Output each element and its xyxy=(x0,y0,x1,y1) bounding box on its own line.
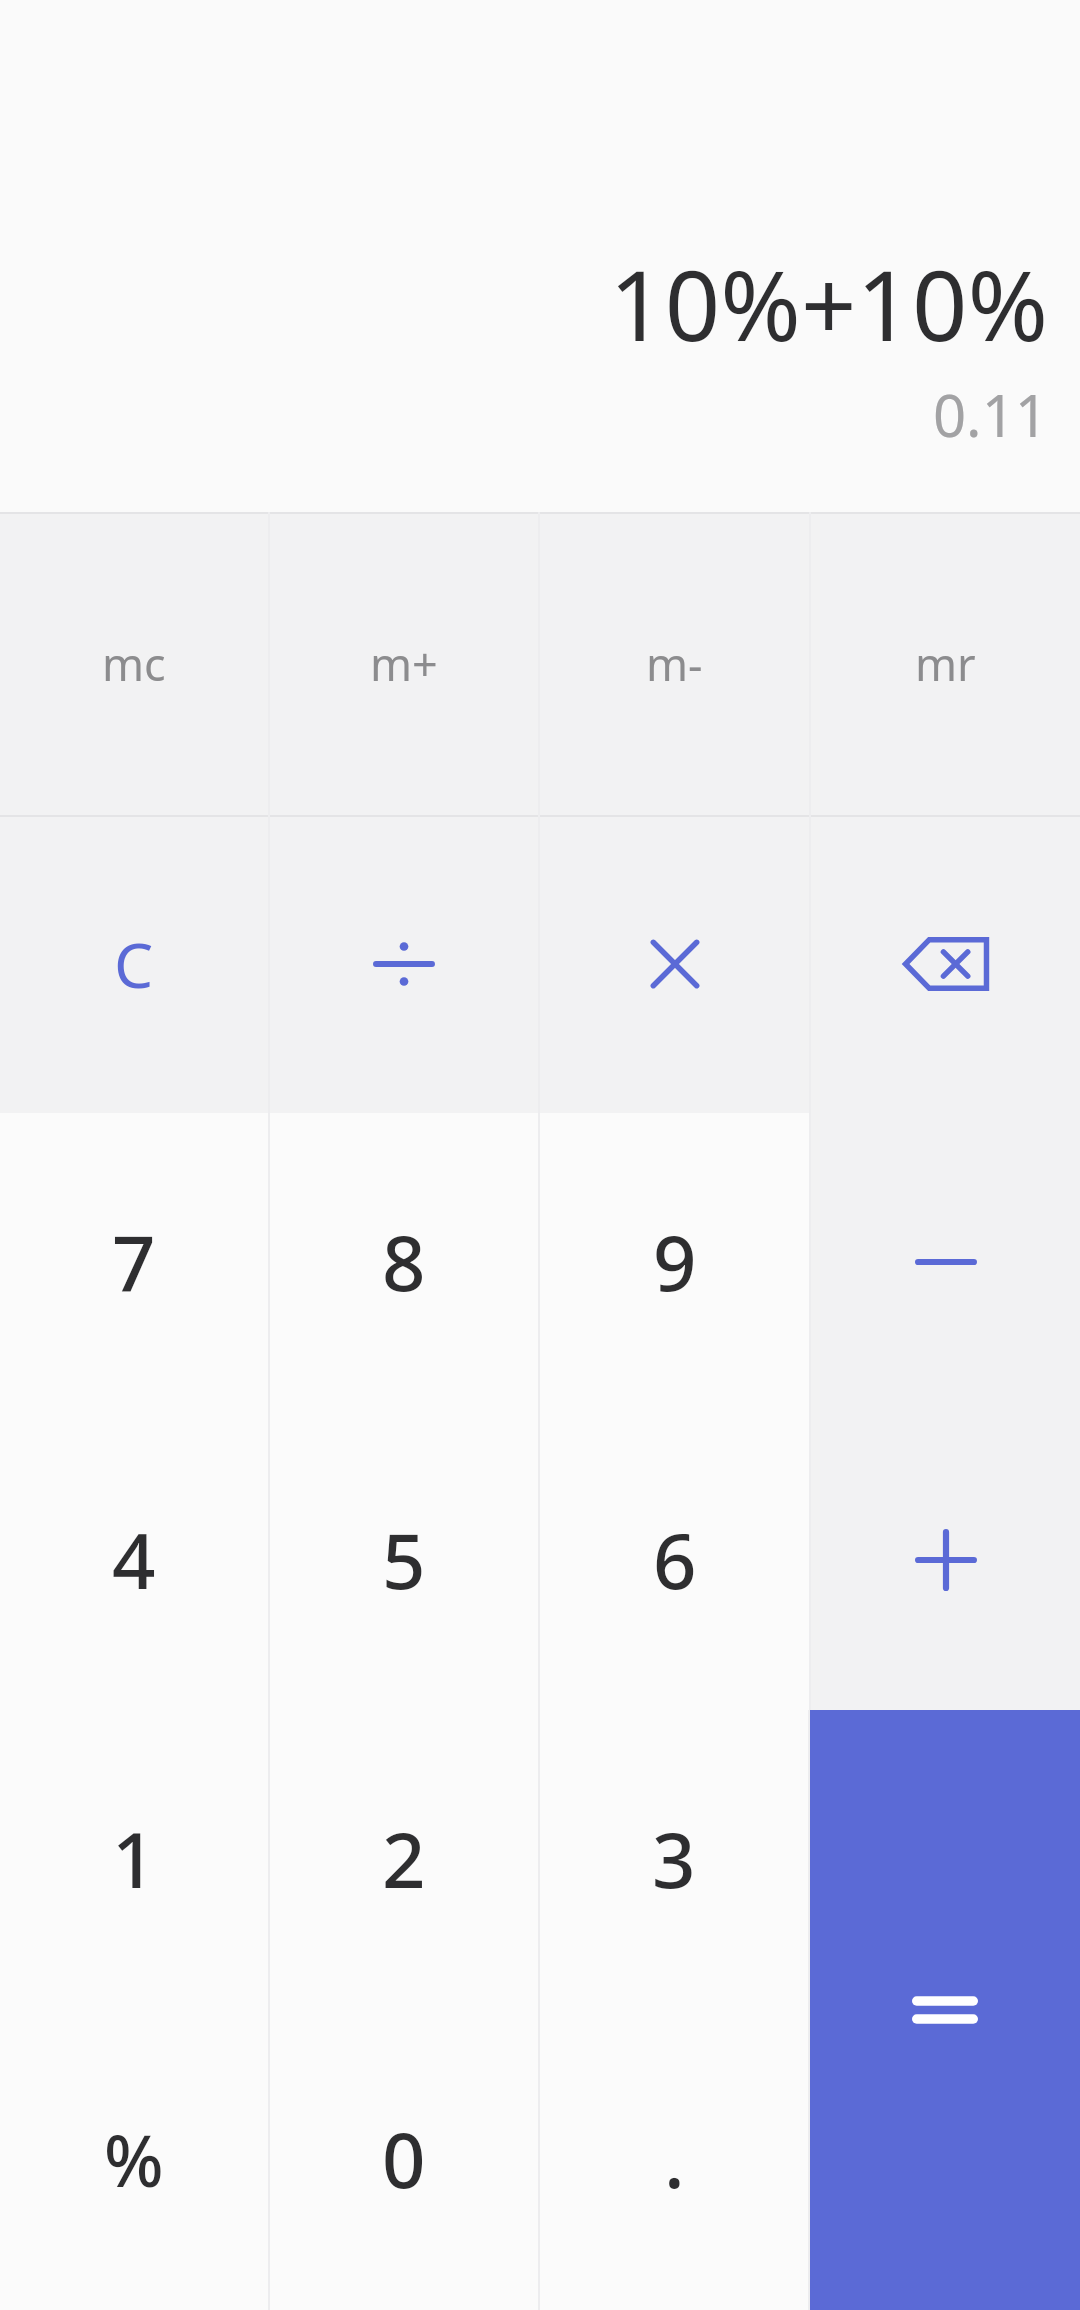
staticText: 0 xyxy=(382,2107,426,2211)
staticText: 7 xyxy=(112,1210,156,1314)
button[interactable]: mc xyxy=(0,512,268,815)
staticText: m+ xyxy=(370,633,438,694)
button[interactable]: Clear xyxy=(0,815,268,1113)
button[interactable]: % xyxy=(0,2008,268,2310)
staticText: 3 xyxy=(652,1807,696,1911)
button[interactable]: Divide xyxy=(270,815,538,1113)
button[interactable]: Plus xyxy=(811,1410,1080,1710)
staticText: 1 xyxy=(112,1807,156,1911)
button[interactable]: 0 xyxy=(270,2008,538,2310)
button[interactable]: 5 xyxy=(270,1410,538,1710)
button[interactable]: 1 xyxy=(0,1710,268,2008)
button[interactable]: . xyxy=(540,2008,808,2310)
button[interactable]: Multiply xyxy=(540,815,809,1113)
button[interactable]: Backspace xyxy=(811,815,1080,1113)
staticText: 6 xyxy=(653,1508,697,1612)
button[interactable]: 6 xyxy=(540,1410,809,1710)
button[interactable]: m- xyxy=(540,512,809,815)
button[interactable]: 3 xyxy=(540,1710,808,2008)
button[interactable]: 7 xyxy=(0,1113,268,1410)
button[interactable]: 9 xyxy=(540,1113,809,1410)
staticText: % xyxy=(104,2112,164,2207)
staticText: 2 xyxy=(382,1807,426,1911)
staticText: 5 xyxy=(382,1508,426,1612)
staticText: mc xyxy=(102,633,166,694)
staticText: 9 xyxy=(653,1210,697,1314)
staticText: 0.11 xyxy=(0,375,1048,454)
button[interactable]: mr xyxy=(811,512,1080,815)
button[interactable]: Equals xyxy=(810,1710,1080,2310)
staticText: 10%+10% xyxy=(0,237,1048,369)
staticText: . xyxy=(664,2107,685,2211)
staticText: 4 xyxy=(112,1508,156,1612)
staticText: m- xyxy=(646,633,703,694)
button[interactable]: m+ xyxy=(270,512,538,815)
staticText: 8 xyxy=(382,1210,426,1314)
button[interactable]: 2 xyxy=(270,1710,538,2008)
button[interactable]: 8 xyxy=(270,1113,538,1410)
button[interactable]: Minus xyxy=(811,1113,1080,1410)
button[interactable]: 4 xyxy=(0,1410,268,1710)
staticText: C xyxy=(114,922,154,1006)
staticText: mr xyxy=(915,633,976,694)
